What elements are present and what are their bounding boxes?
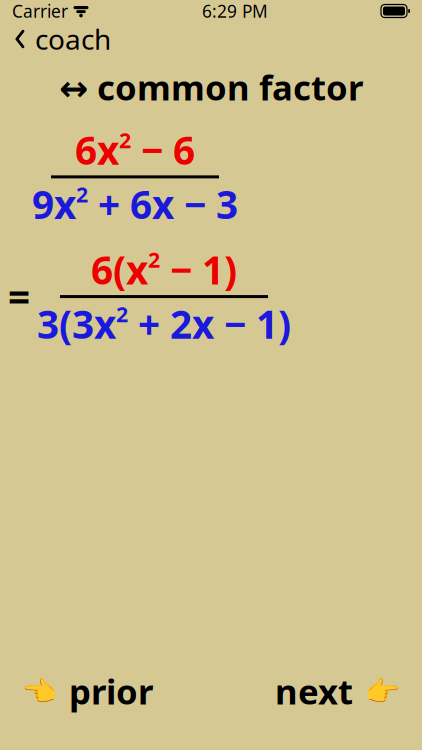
staticText: 2 — [148, 245, 160, 274]
staticText: 6( — [91, 244, 126, 295]
staticText: ↔ common factor — [59, 64, 363, 110]
staticText: 3(3 — [37, 298, 94, 349]
button[interactable]: coach — [0, 15, 121, 63]
staticText: x — [126, 244, 148, 295]
staticText: Carrier — [12, 0, 68, 22]
staticText: prior — [69, 668, 153, 714]
staticText: 6x — [75, 124, 119, 175]
staticText: next — [275, 668, 353, 714]
staticText: coach — [35, 20, 111, 58]
staticText: = — [8, 271, 30, 322]
staticText: + 2x − 1) — [128, 298, 291, 349]
button[interactable]: 👈 — [6, 658, 169, 724]
staticText: 2 — [119, 126, 131, 154]
staticText: 👉 — [365, 675, 400, 707]
staticText: 9x — [32, 178, 76, 230]
button[interactable]: next — [259, 658, 416, 724]
staticText: + 6x − 3 — [88, 178, 238, 230]
staticText: 👈 — [22, 675, 57, 707]
staticText: − 6 — [131, 124, 195, 175]
staticText: 2 — [76, 180, 88, 208]
staticText: 2 — [116, 300, 128, 328]
staticText: 6:29 PM — [202, 0, 268, 22]
staticText: − 1) — [160, 244, 237, 295]
staticText: x — [94, 298, 116, 349]
